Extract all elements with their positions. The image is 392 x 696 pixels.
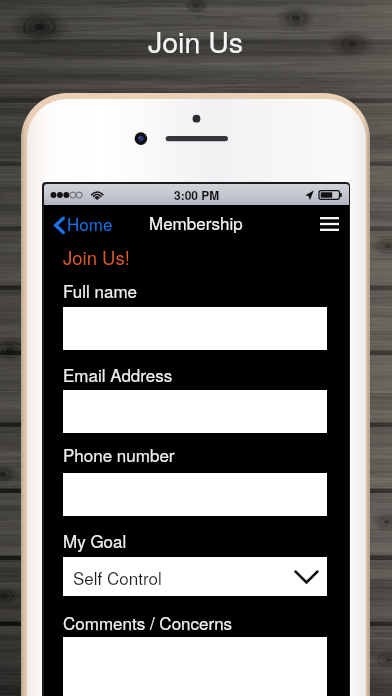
staticText: Join Us! — [63, 244, 130, 270]
button[interactable]: Menu — [314, 210, 345, 238]
button[interactable]: Self Control — [63, 557, 327, 596]
staticText: Email Address — [63, 362, 173, 386]
staticText: Self Control — [73, 565, 162, 589]
staticText: My Goal — [63, 528, 127, 552]
button[interactable]: Home — [48, 208, 121, 238]
staticText: Full name — [63, 278, 138, 302]
staticText: Phone number — [63, 442, 175, 466]
staticText: Comments / Concerns — [63, 610, 233, 634]
staticText: Join Us — [148, 20, 244, 61]
staticText: Membership — [149, 210, 243, 234]
staticText: 3:00 PM — [174, 186, 220, 203]
staticText: Home — [67, 211, 113, 235]
